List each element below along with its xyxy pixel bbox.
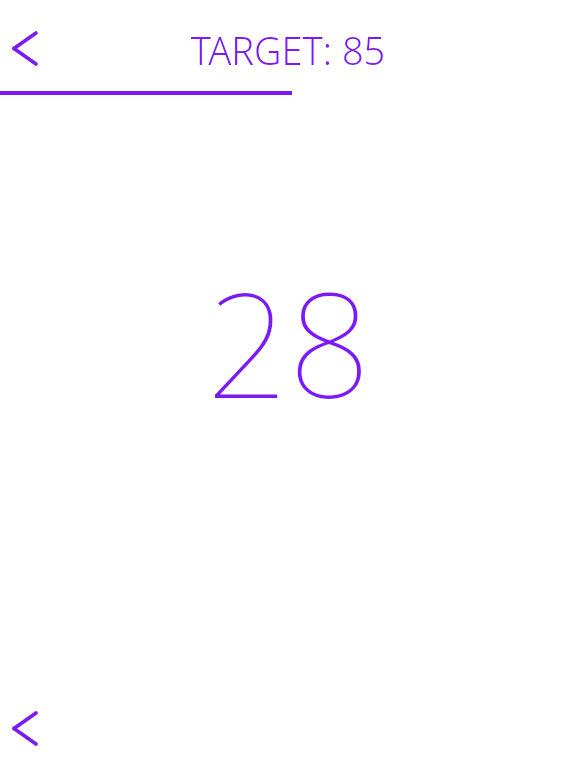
staticText: 28 xyxy=(206,244,371,440)
button[interactable]: Back xyxy=(0,20,53,76)
staticText: TARGET: 85 xyxy=(0,24,576,76)
button[interactable]: Previous xyxy=(0,700,53,756)
